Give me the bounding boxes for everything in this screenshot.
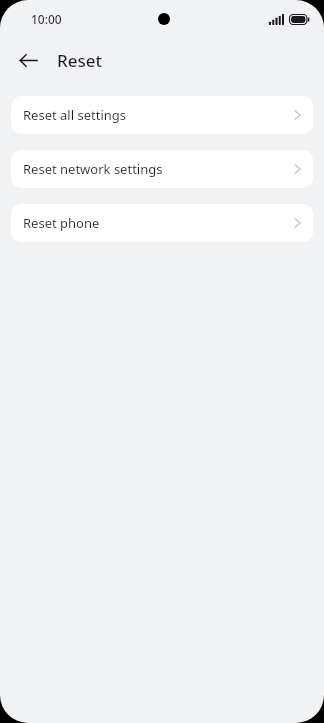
staticText: Reset all settings: [23, 106, 294, 124]
button[interactable]: Reset network settings: [11, 150, 313, 188]
staticText: Reset: [57, 49, 103, 72]
staticText: Reset phone: [23, 214, 294, 232]
button[interactable]: Reset phone: [11, 204, 313, 242]
staticText: Reset network settings: [23, 160, 294, 178]
button[interactable]: Reset all settings: [11, 96, 313, 134]
button[interactable]: Back: [14, 46, 42, 74]
staticText: 10:00: [31, 11, 62, 27]
